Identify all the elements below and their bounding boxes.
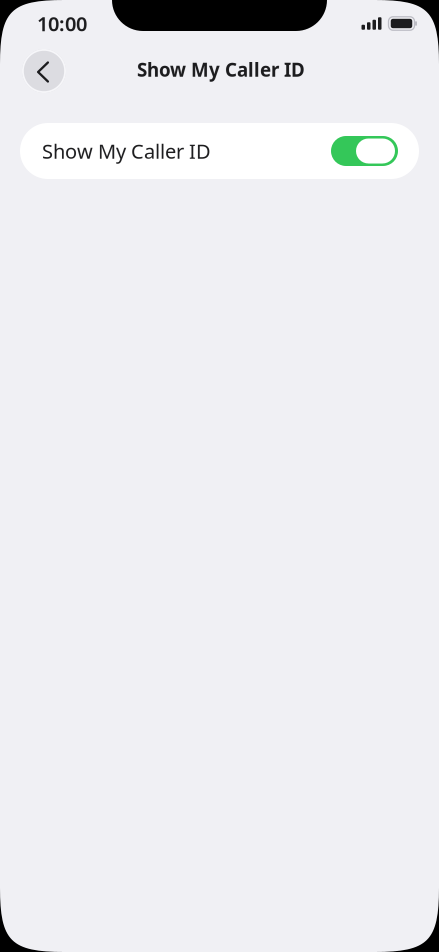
staticText: Show My Caller ID: [137, 57, 305, 82]
button[interactable]: Back: [22, 47, 66, 91]
staticText: 10:00: [37, 10, 87, 37]
staticText: Show My Caller ID: [42, 138, 211, 164]
button[interactable]: Show My Caller ID: [20, 123, 419, 179]
